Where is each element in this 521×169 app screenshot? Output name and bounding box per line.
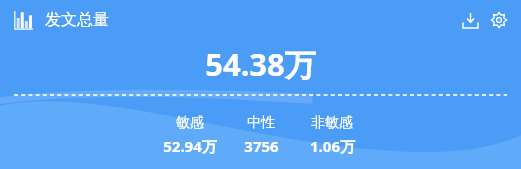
button[interactable]: 设置 (486, 7, 512, 33)
staticText: 1.06万 (310, 136, 355, 156)
button[interactable]: 下载 (457, 7, 483, 33)
button[interactable]: 敏感 (150, 114, 230, 156)
button[interactable]: 统计图表 (11, 8, 35, 32)
staticText: 中性 (247, 114, 275, 132)
staticText: 3756 (244, 136, 279, 156)
staticText: 敏感 (176, 114, 204, 132)
staticText: 发文总量 (45, 10, 109, 30)
staticText: 54.38万 (205, 43, 316, 85)
staticText: 52.94万 (163, 136, 217, 156)
staticText: 非敏感 (311, 114, 353, 132)
button[interactable]: 非敏感 (292, 114, 372, 156)
button[interactable]: 中性 (230, 114, 292, 156)
